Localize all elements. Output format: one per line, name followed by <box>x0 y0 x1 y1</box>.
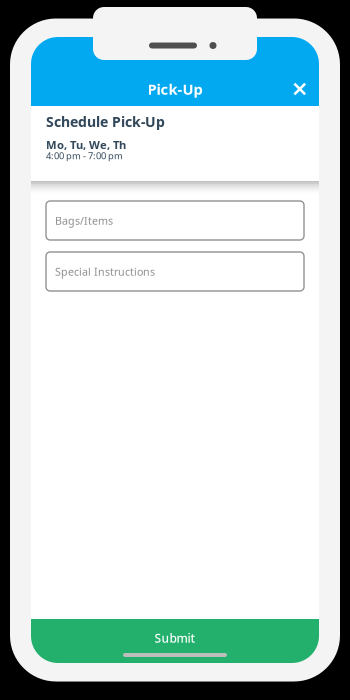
button[interactable]: Bags/Items <box>46 201 304 240</box>
staticText: Special Instructions <box>55 264 155 279</box>
staticText: Pick-Up <box>147 79 202 99</box>
staticText: 4:00 pm - 7:00 pm <box>46 149 123 162</box>
staticText: Bags/Items <box>55 213 113 228</box>
button[interactable]: Submit <box>31 619 319 663</box>
staticText: Mo, Tu, We, Th <box>46 137 126 152</box>
button[interactable]: Close <box>285 76 314 102</box>
button[interactable]: Special Instructions <box>46 252 304 291</box>
staticText: Submit <box>154 630 195 646</box>
staticText: Schedule Pick-Up <box>46 112 165 131</box>
